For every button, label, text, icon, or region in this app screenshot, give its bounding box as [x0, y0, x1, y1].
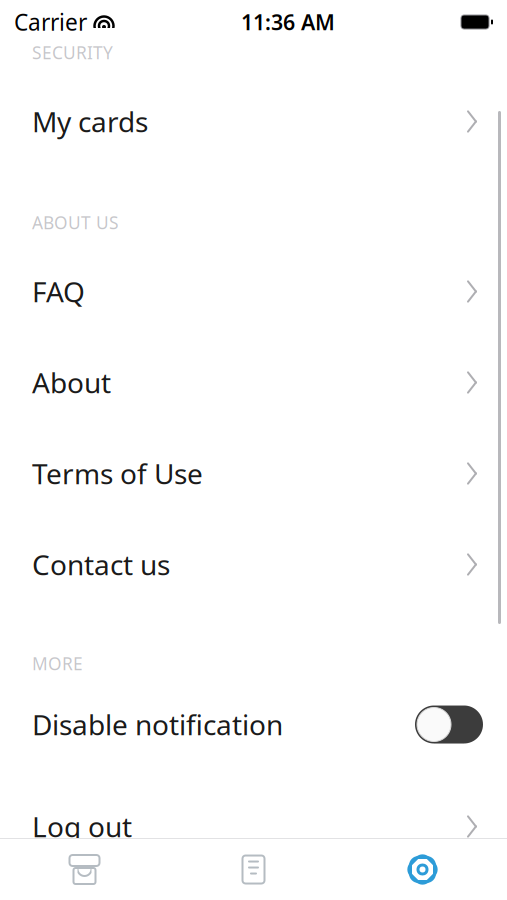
staticText: SECURITY — [32, 41, 113, 64]
staticText: Carrier — [14, 7, 87, 37]
staticText: About — [32, 364, 111, 401]
button[interactable]: Contact us — [0, 534, 507, 594]
button[interactable]: Log out — [0, 796, 507, 856]
button[interactable]: My cards — [0, 91, 507, 151]
staticText: Contact us — [32, 546, 170, 583]
button[interactable]: Disable notification — [0, 694, 507, 754]
staticText: Disable notification — [32, 706, 283, 743]
button[interactable]: Settings — [338, 839, 507, 899]
staticText: ABOUT US — [32, 211, 119, 234]
staticText: 11:36 AM — [241, 8, 335, 36]
staticText: Terms of Use — [32, 455, 203, 492]
button[interactable]: About — [0, 352, 507, 412]
button[interactable]: FAQ — [0, 261, 507, 321]
staticText: My cards — [32, 103, 148, 140]
button[interactable]: Orders — [169, 839, 338, 899]
button[interactable]: Shop — [0, 839, 169, 899]
staticText: FAQ — [32, 273, 85, 310]
button[interactable]: Terms of Use — [0, 443, 507, 503]
staticText: MORE — [32, 652, 83, 675]
staticText: Log out — [32, 808, 132, 845]
